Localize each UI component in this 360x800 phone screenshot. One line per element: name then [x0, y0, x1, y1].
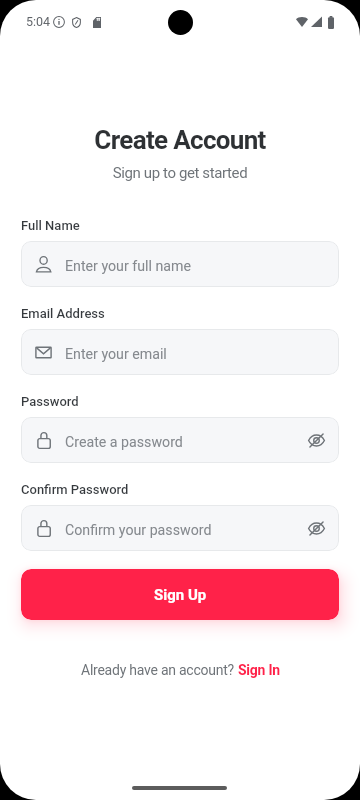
- staticText: 5:04: [26, 14, 51, 29]
- staticText: Enter your email: [65, 346, 167, 363]
- button[interactable]: Confirm your password: [21, 505, 339, 551]
- button[interactable]: Sign In: [238, 662, 280, 678]
- button[interactable]: Show password: [296, 420, 336, 460]
- staticText: Enter your full name: [65, 258, 191, 275]
- staticText: Already have an account?: [81, 662, 238, 678]
- staticText: Sign In: [238, 662, 280, 678]
- button[interactable]: Sign Up: [21, 569, 339, 620]
- staticText: Full Name: [21, 218, 80, 233]
- staticText: Sign up to get started: [0, 164, 360, 182]
- staticText: Confirm Password: [21, 482, 129, 497]
- staticText: Sign Up: [154, 586, 207, 604]
- staticText: Email Address: [21, 306, 105, 321]
- button[interactable]: Enter your full name: [21, 241, 339, 287]
- staticText: Confirm your password: [65, 522, 212, 539]
- button[interactable]: Enter your email: [21, 329, 339, 375]
- button[interactable]: Show password: [296, 508, 336, 548]
- staticText: Password: [21, 394, 79, 409]
- staticText: Create Account: [0, 125, 360, 155]
- staticText: Create a password: [65, 434, 183, 451]
- button[interactable]: Create a password: [21, 417, 339, 463]
